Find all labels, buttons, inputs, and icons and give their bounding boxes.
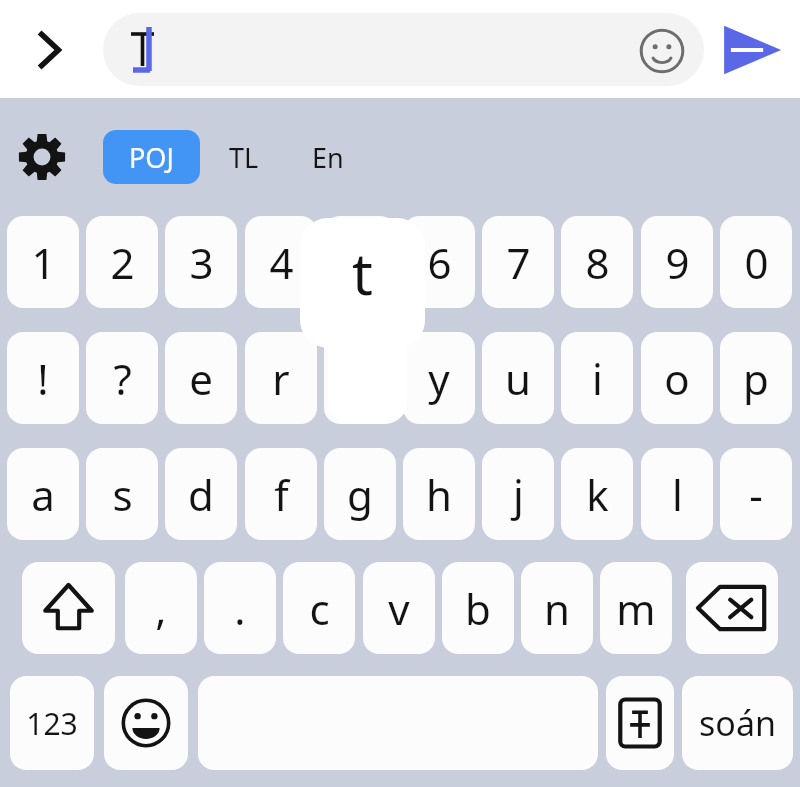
button[interactable]: 7 xyxy=(482,216,554,308)
staticText: 4 xyxy=(269,234,294,291)
button[interactable]: En xyxy=(297,130,359,184)
button[interactable]: m xyxy=(600,562,672,654)
staticText: d xyxy=(188,466,214,523)
button[interactable]: l xyxy=(641,448,713,540)
button[interactable]: o xyxy=(641,332,713,424)
button[interactable]: b xyxy=(442,562,514,654)
staticText: . xyxy=(234,580,246,637)
staticText: ! xyxy=(37,350,49,407)
button[interactable]: g xyxy=(324,448,396,540)
button[interactable]: TL xyxy=(214,130,274,184)
button[interactable]: u xyxy=(482,332,554,424)
staticText: k xyxy=(586,466,609,523)
button[interactable]: i xyxy=(561,332,633,424)
button[interactable]: 4 xyxy=(245,216,317,308)
staticText: a xyxy=(31,466,55,523)
staticText: g xyxy=(347,466,373,523)
button[interactable]: v xyxy=(363,562,435,654)
button[interactable]: Send xyxy=(721,23,783,77)
staticText: j xyxy=(513,466,524,523)
button[interactable]: - xyxy=(720,448,792,540)
button[interactable]: 6 xyxy=(403,216,475,308)
button[interactable]: k xyxy=(561,448,633,540)
button[interactable]: 0 xyxy=(720,216,792,308)
button[interactable]: . xyxy=(204,562,276,654)
button[interactable]: 8 xyxy=(561,216,633,308)
staticText: c xyxy=(309,580,330,637)
button[interactable]: 5 xyxy=(324,216,396,308)
button[interactable]: c xyxy=(283,562,355,654)
button[interactable]: POJ xyxy=(103,130,200,184)
button[interactable]: Space xyxy=(198,676,598,770)
button[interactable]: 3 xyxy=(165,216,237,308)
button[interactable]: f xyxy=(245,448,317,540)
button[interactable]: ! xyxy=(7,332,79,424)
button[interactable]: ? xyxy=(86,332,158,424)
button[interactable]: Settings xyxy=(17,132,67,182)
button[interactable]: a xyxy=(7,448,79,540)
button[interactable]: h xyxy=(403,448,475,540)
button[interactable]: s xyxy=(86,448,158,540)
staticText: 7 xyxy=(506,234,531,291)
button[interactable]: 1 xyxy=(7,216,79,308)
staticText: f xyxy=(274,466,289,523)
staticText: y xyxy=(428,350,450,407)
staticText: TL xyxy=(229,139,259,176)
staticText: 5 xyxy=(348,234,373,291)
staticText: i xyxy=(592,350,603,407)
button[interactable]: e xyxy=(165,332,237,424)
button[interactable]: soán xyxy=(682,676,793,770)
staticText: 6 xyxy=(427,234,452,291)
button[interactable]: 2 xyxy=(86,216,158,308)
staticText: v xyxy=(388,580,410,637)
staticText: soán xyxy=(699,700,776,746)
button[interactable]: Emoji xyxy=(639,28,685,74)
button[interactable]: n xyxy=(521,562,593,654)
staticText: 3 xyxy=(189,234,214,291)
staticText: 123 xyxy=(26,703,78,744)
button[interactable]: r xyxy=(245,332,317,424)
staticText: - xyxy=(749,466,763,523)
staticText: o xyxy=(664,350,690,407)
staticText: En xyxy=(312,139,344,176)
button[interactable]: 123 xyxy=(10,676,94,770)
staticText: 0 xyxy=(744,234,769,291)
staticText: ? xyxy=(113,350,132,407)
staticText: POJ xyxy=(129,139,174,176)
staticText: b xyxy=(465,580,491,637)
button[interactable]: t xyxy=(324,332,396,424)
staticText: l xyxy=(672,466,683,523)
staticText: s xyxy=(112,466,133,523)
button[interactable]: Shift xyxy=(22,562,115,654)
button[interactable]: Expand toolbar xyxy=(20,22,80,78)
staticText: 8 xyxy=(585,234,610,291)
button[interactable]: j xyxy=(482,448,554,540)
staticText: h xyxy=(426,466,452,523)
button[interactable]: y xyxy=(403,332,475,424)
staticText: m xyxy=(616,580,656,637)
button[interactable]: Backspace xyxy=(686,562,778,654)
staticText: t xyxy=(352,233,373,312)
staticText: p xyxy=(743,350,769,407)
button[interactable]: , xyxy=(125,562,197,654)
button[interactable] xyxy=(103,13,704,86)
staticText: 9 xyxy=(665,234,690,291)
button[interactable]: 9 xyxy=(641,216,713,308)
button[interactable]: d xyxy=(165,448,237,540)
button[interactable]: Emoji keyboard xyxy=(104,676,188,770)
staticText: n xyxy=(544,580,570,637)
button[interactable]: Input mode xyxy=(606,676,674,770)
staticText: e xyxy=(189,350,213,407)
staticText: r xyxy=(272,350,290,407)
staticText: 2 xyxy=(110,234,135,291)
staticText: , xyxy=(155,580,167,637)
staticText: 1 xyxy=(31,234,56,291)
staticText: u xyxy=(505,350,531,407)
button[interactable]: p xyxy=(720,332,792,424)
